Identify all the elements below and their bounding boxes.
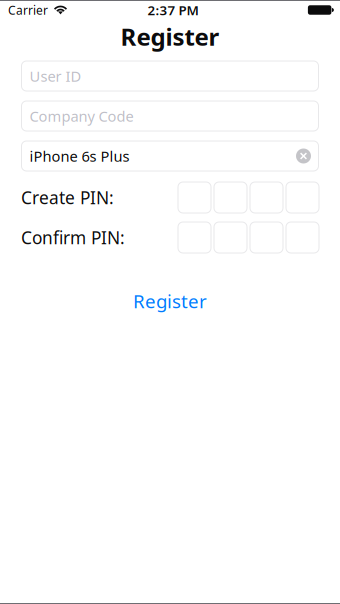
button[interactable]: Register [110, 288, 230, 314]
button[interactable]: iPhone 6s Plus [21, 141, 318, 171]
button[interactable]: Clear text [295, 148, 311, 164]
button[interactable]: Create PIN: digit 3 [250, 182, 283, 213]
staticText: Confirm PIN: [21, 226, 125, 249]
staticText: User ID [29, 66, 81, 86]
staticText: Register [133, 289, 207, 313]
staticText: Create PIN: [21, 186, 114, 209]
button[interactable]: Confirm PIN: digit 2 [214, 222, 247, 253]
button[interactable]: Create PIN: digit 2 [214, 182, 247, 213]
button[interactable]: Confirm PIN: digit 4 [286, 222, 319, 253]
staticText: iPhone 6s Plus [29, 146, 129, 166]
staticText: 2:37 PM [147, 1, 198, 19]
staticText: Register [120, 21, 219, 52]
staticText: Company Code [29, 106, 133, 126]
button[interactable]: User ID [21, 61, 318, 91]
button[interactable]: Confirm PIN: digit 1 [178, 222, 211, 253]
button[interactable]: Create PIN: digit 1 [178, 182, 211, 213]
staticText: Carrier [8, 2, 48, 18]
button[interactable]: Confirm PIN: digit 3 [250, 222, 283, 253]
button[interactable]: Create PIN: digit 4 [286, 182, 319, 213]
button[interactable]: Company Code [21, 101, 318, 131]
